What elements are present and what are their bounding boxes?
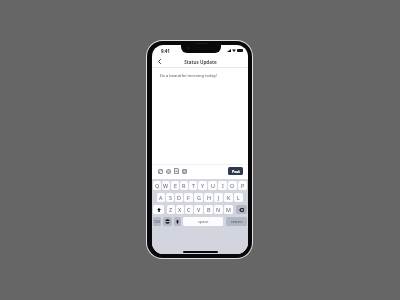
- staticText: Q: [155, 182, 160, 189]
- button[interactable]: B: [204, 205, 213, 214]
- staticText: D: [177, 194, 181, 201]
- button[interactable]: X: [176, 205, 184, 214]
- staticText: R: [182, 182, 186, 189]
- staticText: space: [198, 219, 209, 224]
- button[interactable]: 123: [153, 217, 161, 226]
- staticText: E: [174, 182, 177, 189]
- staticText: C: [187, 206, 191, 213]
- staticText: Z: [169, 206, 173, 213]
- staticText: 9:41: [161, 48, 170, 54]
- staticText: P: [241, 182, 245, 189]
- staticText: X: [178, 206, 182, 213]
- button[interactable]: Attach file: [174, 168, 179, 174]
- button[interactable]: G: [194, 193, 203, 202]
- staticText: L: [237, 194, 240, 201]
- button[interactable]: L: [234, 193, 243, 202]
- button[interactable]: Z: [167, 205, 175, 214]
- button[interactable]: GIF: [182, 168, 187, 174]
- staticText: return: [231, 219, 243, 224]
- staticText: J: [218, 194, 220, 201]
- staticText: T: [192, 182, 195, 189]
- staticText: Its a beautiful morning today!: [160, 73, 217, 78]
- button[interactable]: I: [218, 181, 227, 190]
- button[interactable]: H: [204, 193, 213, 202]
- button[interactable]: A: [157, 193, 165, 202]
- button[interactable]: K: [224, 193, 233, 202]
- staticText: I: [222, 182, 224, 189]
- staticText: B: [207, 206, 211, 213]
- staticText: M: [226, 206, 231, 213]
- staticText: 123: [154, 219, 160, 224]
- button[interactable]: Y: [198, 181, 207, 190]
- staticText: F: [187, 194, 190, 201]
- button[interactable]: T: [189, 181, 197, 190]
- button[interactable]: Emoji: [163, 217, 172, 226]
- button[interactable]: Back: [155, 57, 164, 66]
- staticText: H: [207, 194, 211, 201]
- button[interactable]: space: [183, 217, 223, 226]
- staticText: Status Update: [184, 59, 217, 65]
- staticText: U: [211, 182, 215, 189]
- button[interactable]: Dictate: [174, 217, 181, 226]
- button[interactable]: F: [184, 193, 193, 202]
- staticText: N: [216, 206, 221, 213]
- button[interactable]: Add photo: [158, 168, 163, 174]
- button[interactable]: Camera: [166, 168, 171, 174]
- button[interactable]: M: [224, 205, 233, 214]
- staticText: G: [197, 194, 201, 201]
- button[interactable]: N: [214, 205, 223, 214]
- button[interactable]: return: [226, 217, 247, 226]
- staticText: O: [230, 182, 235, 189]
- button[interactable]: U: [208, 181, 217, 190]
- button[interactable]: C: [185, 205, 193, 214]
- button[interactable]: O: [228, 181, 237, 190]
- button[interactable]: Shift: [153, 205, 164, 214]
- staticText: Y: [201, 182, 205, 189]
- button[interactable]: J: [214, 193, 223, 202]
- button[interactable]: E: [171, 181, 179, 190]
- button[interactable]: D: [175, 193, 183, 202]
- staticText: W: [163, 182, 169, 189]
- button[interactable]: W: [162, 181, 170, 190]
- button[interactable]: S: [166, 193, 174, 202]
- staticText: S: [169, 194, 172, 201]
- button[interactable]: Backspace: [236, 205, 247, 214]
- button[interactable]: R: [180, 181, 188, 190]
- staticText: K: [227, 194, 231, 201]
- button[interactable]: P: [238, 181, 247, 190]
- button[interactable]: Q: [153, 181, 161, 190]
- button[interactable]: Post: [228, 167, 243, 175]
- staticText: V: [197, 206, 201, 213]
- staticText: Post: [232, 169, 240, 174]
- button[interactable]: V: [194, 205, 203, 214]
- staticText: A: [159, 194, 163, 201]
